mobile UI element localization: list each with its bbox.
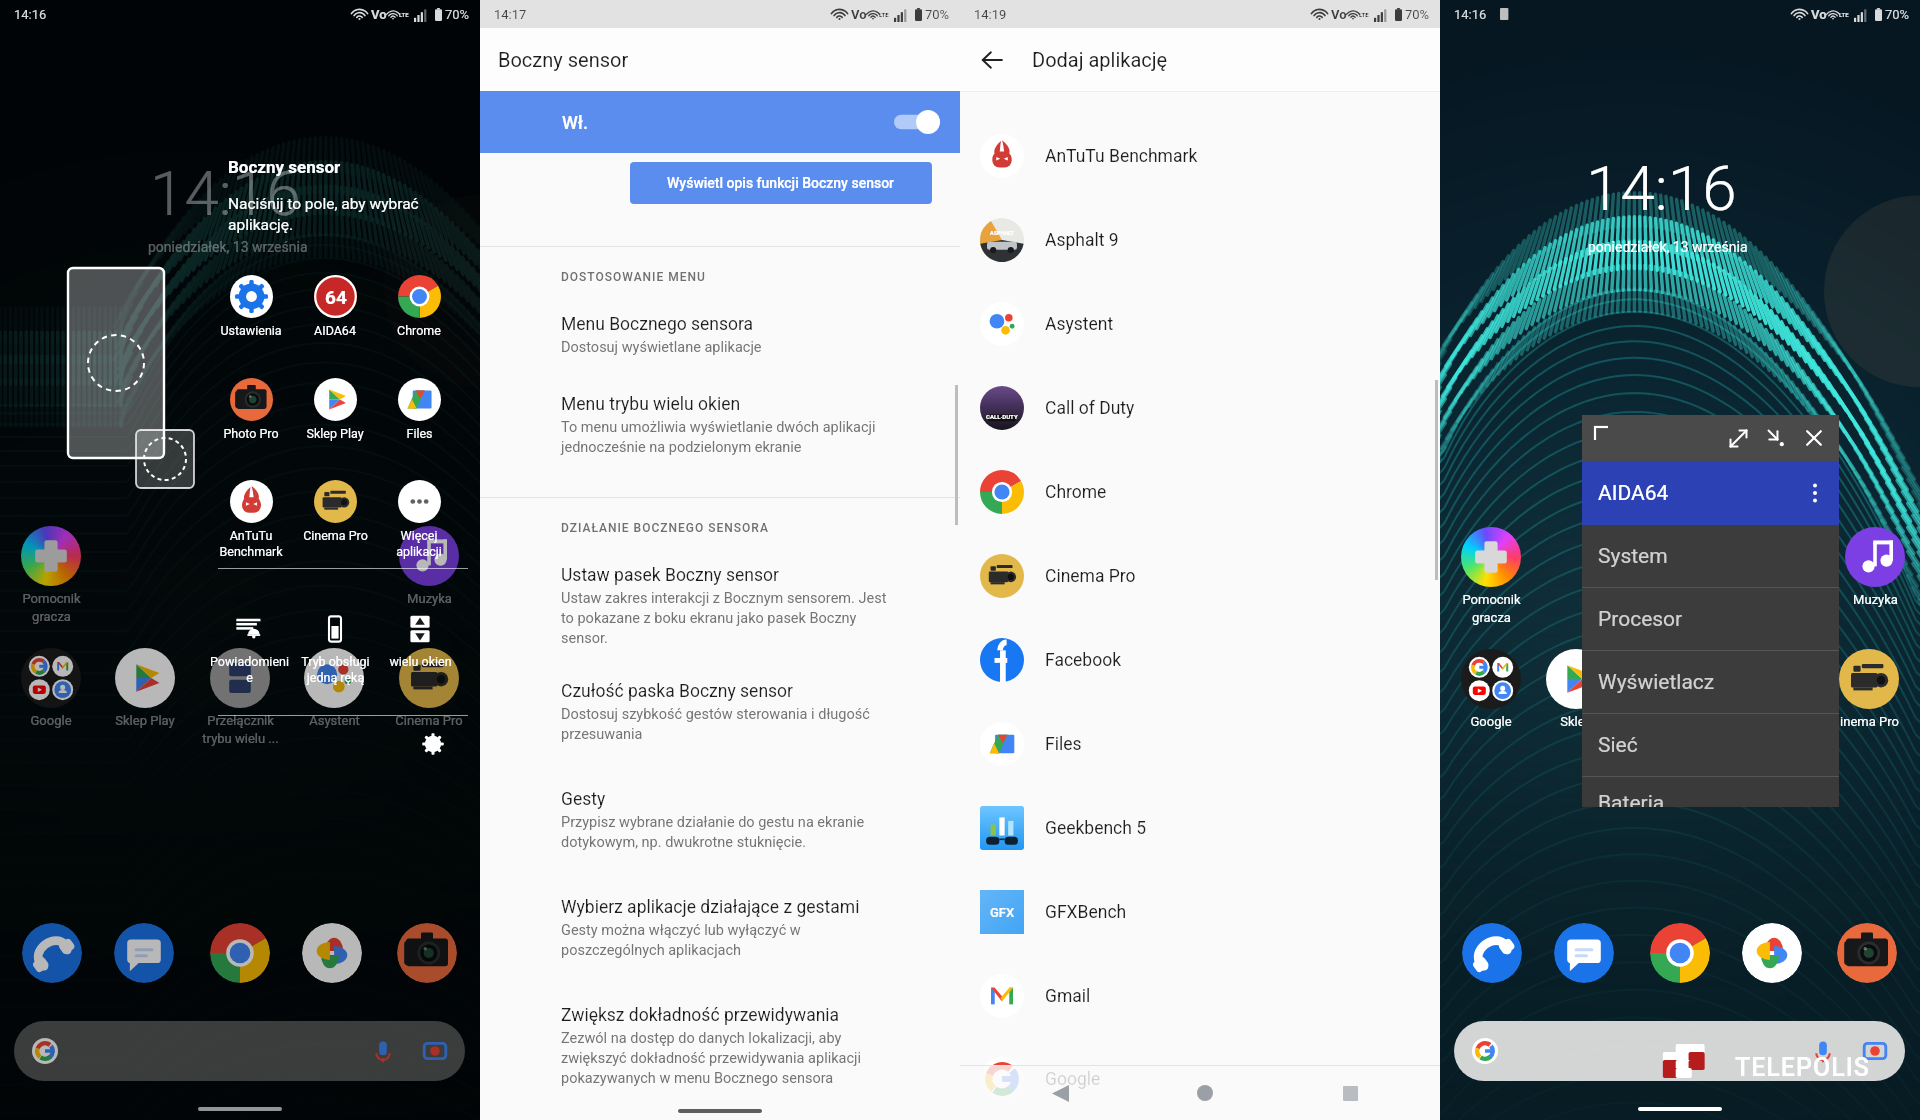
staticText: 14:16 [14, 7, 47, 22]
button[interactable]: Cinema Pro [293, 480, 377, 543]
staticText: Boczny sensor [228, 157, 341, 177]
button[interactable]: Zwiększ dokładność przewidywania [480, 998, 960, 1114]
button[interactable]: App [1462, 923, 1522, 983]
staticText: Vo [851, 7, 867, 22]
button[interactable]: Google [960, 1038, 1440, 1120]
button[interactable]: Settings [421, 732, 445, 756]
button[interactable]: Sklep Play [100, 648, 190, 728]
button[interactable]: inema Pro [1831, 649, 1907, 729]
button[interactable]: App [1837, 923, 1897, 983]
button[interactable]: Czułość paska Boczny sensor [480, 674, 960, 782]
staticText: AIDA64 [1598, 481, 1669, 506]
staticText: Więcej aplikacji [396, 528, 442, 559]
staticText: Geekbench 5 [1045, 818, 1147, 839]
button[interactable]: App [1554, 923, 1614, 983]
button[interactable]: Chrome [960, 450, 1440, 534]
button[interactable]: Muzyka [384, 526, 474, 606]
button[interactable]: Asystent [960, 282, 1440, 366]
staticText: Procesor [1598, 607, 1683, 632]
staticText: Pomocnik gracza [22, 591, 81, 624]
staticText: Chrome [397, 323, 441, 338]
button[interactable]: Menu trybu wielu okien [480, 387, 960, 495]
staticText: Wyświetl opis funkcji Boczny sensor [667, 175, 895, 191]
button[interactable]: Cinema Pro [960, 534, 1440, 618]
button[interactable]: System [1582, 525, 1839, 588]
button[interactable]: Facebook [960, 618, 1440, 702]
button[interactable]: Powiadomieni e [207, 614, 291, 686]
button[interactable]: Wł. [480, 91, 960, 153]
staticText: Wł. [562, 112, 589, 133]
button[interactable]: Tryb obsługi jedną ręką [293, 614, 377, 686]
button[interactable]: Gesty [480, 782, 960, 890]
staticText: 64 [325, 286, 347, 308]
button[interactable] [1454, 1021, 1905, 1081]
button[interactable]: More options [1801, 479, 1829, 507]
button[interactable]: Files [960, 702, 1440, 786]
button[interactable]: Pomocnik gracza [1453, 527, 1529, 625]
staticText: Menu trybu wielu okien [561, 394, 741, 415]
button[interactable]: Google [6, 648, 96, 728]
staticText: wielu okien [389, 654, 452, 669]
staticText: Przypisz wybrane działanie do gestu na e… [561, 814, 865, 851]
button[interactable]: Geekbench 5 [960, 786, 1440, 870]
button[interactable]: App [1742, 923, 1802, 983]
staticText: Vo [1331, 7, 1347, 22]
button[interactable]: Muzyka [1837, 527, 1913, 607]
button[interactable]: Gmail [960, 954, 1440, 1038]
button[interactable]: App [114, 923, 174, 983]
button[interactable]: Menu Bocznego sensora [480, 307, 960, 387]
button[interactable]: ASPHALT [960, 198, 1440, 282]
button[interactable]: Google [1453, 649, 1529, 729]
button[interactable]: GFX [960, 870, 1440, 954]
button[interactable]: App [1650, 923, 1710, 983]
button[interactable]: Wyświetlacz [1582, 651, 1839, 714]
button[interactable]: CALL·DUTY [960, 366, 1440, 450]
staticText: Gesty można włączyć lub wyłączyć w poszc… [561, 922, 801, 959]
button[interactable]: AnTuTu Benchmark [960, 114, 1440, 198]
button[interactable]: Shrink [1759, 421, 1793, 455]
staticText: Vo [1811, 7, 1827, 22]
staticText: Czułość paska Boczny sensor [561, 681, 794, 702]
staticText: 14:16 [1586, 152, 1737, 225]
button[interactable]: Wyświetl opis funkcji Boczny sensor [630, 162, 932, 204]
staticText: 14:16 [150, 157, 301, 230]
button[interactable]: Pomocnik gracza [6, 526, 96, 624]
button[interactable]: Więcej aplikacji [377, 480, 461, 559]
button[interactable]: Recents [1325, 1068, 1375, 1118]
staticText: Tryb obsługi jedną ręką [301, 654, 370, 686]
staticText: To menu umożliwia wyświetlanie dwóch apl… [561, 419, 876, 456]
button[interactable]: Sklep Play [293, 378, 377, 441]
button[interactable]: Sieć [1582, 714, 1839, 777]
button[interactable]: Cinema Pro [384, 648, 474, 728]
button[interactable]: App [302, 923, 362, 983]
button[interactable]: Home [1180, 1068, 1230, 1118]
button[interactable]: App [22, 923, 82, 983]
button[interactable]: App [397, 923, 457, 983]
button[interactable]: Photo Pro [209, 378, 293, 441]
button[interactable]: Close [1797, 421, 1831, 455]
button[interactable]: Files [377, 378, 461, 441]
button[interactable]: Ustawienia [209, 275, 293, 338]
button[interactable]: Sklep [1538, 649, 1614, 729]
staticText: Sklep Play [115, 713, 175, 728]
button[interactable] [14, 1021, 465, 1081]
button[interactable]: AnTuTu Benchmark [209, 480, 293, 559]
button[interactable]: Procesor [1582, 588, 1839, 651]
staticText: Asystent [309, 713, 360, 728]
button[interactable]: Wybierz aplikacje działające z gestami [480, 890, 960, 998]
button[interactable]: Chrome [377, 275, 461, 338]
button[interactable]: Back [970, 38, 1014, 82]
staticText: Cinema Pro [395, 713, 463, 728]
staticText: DZIAŁANIE BOCZNEGO SENSORA [561, 521, 769, 535]
button[interactable]: Ustaw pasek Boczny sensor [480, 558, 960, 674]
button[interactable]: Expand [1721, 421, 1755, 455]
button[interactable]: App [210, 923, 270, 983]
button[interactable]: 64 [293, 275, 377, 338]
button[interactable]: Asystent [289, 648, 379, 728]
button[interactable]: wielu okien [378, 614, 462, 669]
button[interactable]: Przełącznik trybu wielu ... [195, 648, 285, 746]
button[interactable]: AIDA64 [1582, 461, 1839, 525]
button[interactable]: Back [1035, 1068, 1085, 1118]
staticText: Zezwól na dostęp do danych lokalizacji, … [561, 1030, 862, 1087]
staticText: LTE [399, 11, 409, 18]
